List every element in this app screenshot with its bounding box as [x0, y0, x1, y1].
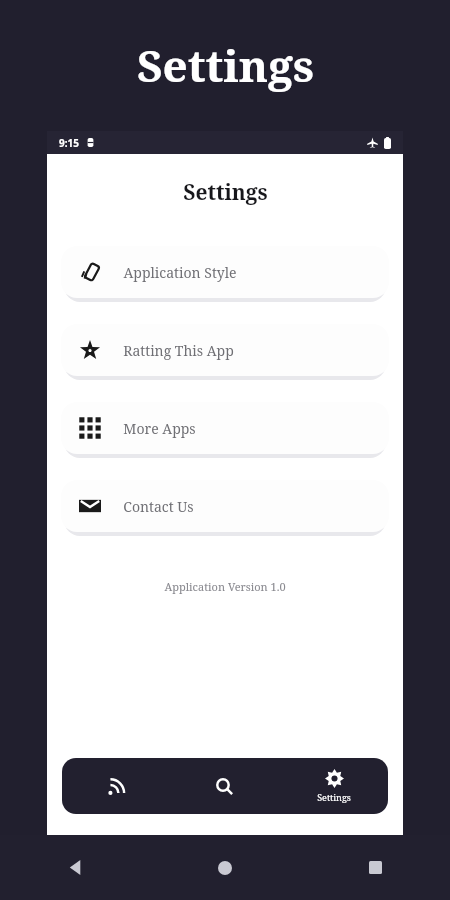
- button[interactable]: Feed: [62, 758, 170, 814]
- button[interactable]: Ratting This App: [61, 324, 389, 376]
- staticText: Settings: [183, 178, 268, 207]
- staticText: Settings: [317, 791, 351, 803]
- button[interactable]: Search: [170, 758, 279, 814]
- button[interactable]: Back: [0, 835, 150, 900]
- button[interactable]: Home: [150, 835, 300, 900]
- staticText: Ratting This App: [123, 341, 234, 360]
- staticText: Application Version 1.0: [164, 579, 286, 594]
- staticText: Application Style: [123, 263, 237, 282]
- staticText: Settings: [137, 35, 314, 95]
- staticText: 9:15: [59, 136, 79, 150]
- button[interactable]: Settings: [279, 758, 388, 814]
- button[interactable]: More Apps: [61, 402, 389, 454]
- button[interactable]: Recent apps: [300, 835, 450, 900]
- button[interactable]: Application Style: [61, 246, 389, 298]
- other: Feed: [107, 777, 126, 796]
- staticText: Contact Us: [123, 497, 194, 516]
- other: Search: [215, 777, 234, 796]
- button[interactable]: Contact Us: [61, 480, 389, 532]
- staticText: More Apps: [123, 419, 196, 438]
